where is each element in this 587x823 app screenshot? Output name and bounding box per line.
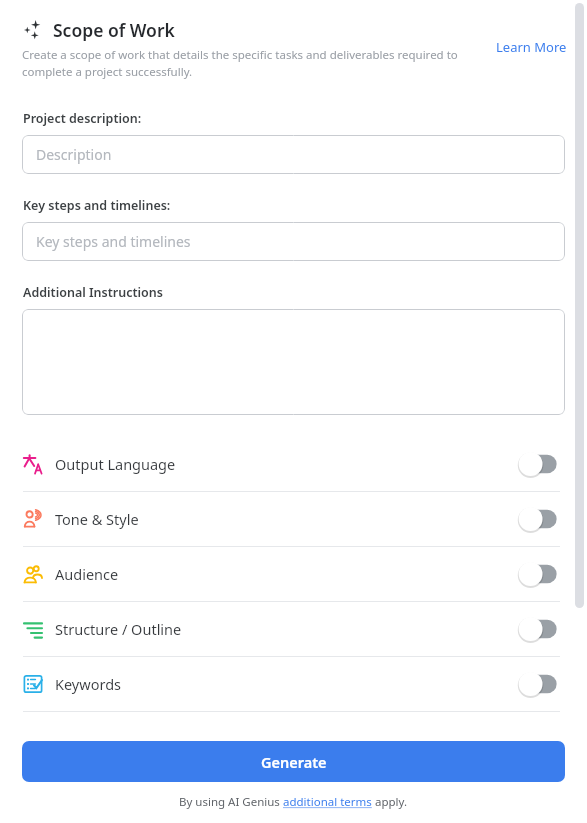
button[interactable]: Toggle bbox=[518, 506, 560, 532]
staticText: Learn More bbox=[496, 38, 567, 56]
staticText: Description bbox=[36, 145, 112, 164]
staticText: Audience bbox=[55, 564, 518, 584]
button[interactable]: Description bbox=[22, 135, 565, 174]
staticText: Create a scope of work that details the … bbox=[22, 47, 484, 79]
staticText: Generate bbox=[261, 752, 327, 772]
button[interactable]: Learn More bbox=[492, 18, 569, 60]
staticText: Output Language bbox=[55, 454, 518, 474]
staticText: additional terms bbox=[283, 794, 372, 810]
button[interactable]: Toggle bbox=[518, 451, 560, 477]
button[interactable]: Audience bbox=[0, 547, 587, 601]
button[interactable]: Toggle bbox=[518, 616, 560, 642]
button[interactable]: Output Language bbox=[0, 437, 587, 491]
staticText: apply. bbox=[372, 794, 408, 810]
button[interactable]: Tone & Style bbox=[0, 492, 587, 546]
button[interactable]: Key steps and timelines bbox=[22, 222, 565, 261]
staticText: Scope of Work bbox=[53, 18, 175, 42]
staticText: Tone & Style bbox=[55, 509, 518, 529]
staticText: Additional Instructions bbox=[23, 284, 163, 301]
button[interactable]: Generate bbox=[22, 741, 565, 782]
staticText: By using AI Genius bbox=[179, 794, 283, 810]
staticText: Project description: bbox=[23, 110, 142, 127]
staticText: Key steps and timelines: bbox=[23, 197, 171, 214]
staticText: Keywords bbox=[55, 674, 518, 694]
button[interactable]: Keywords bbox=[0, 657, 587, 711]
button[interactable]: Toggle bbox=[518, 671, 560, 697]
button[interactable]: Toggle bbox=[518, 561, 560, 587]
button[interactable]: additional terms bbox=[283, 794, 372, 810]
button[interactable] bbox=[22, 309, 565, 415]
button[interactable]: Structure / Outline bbox=[0, 602, 587, 656]
staticText: Structure / Outline bbox=[55, 619, 518, 639]
staticText: Key steps and timelines bbox=[36, 232, 191, 251]
